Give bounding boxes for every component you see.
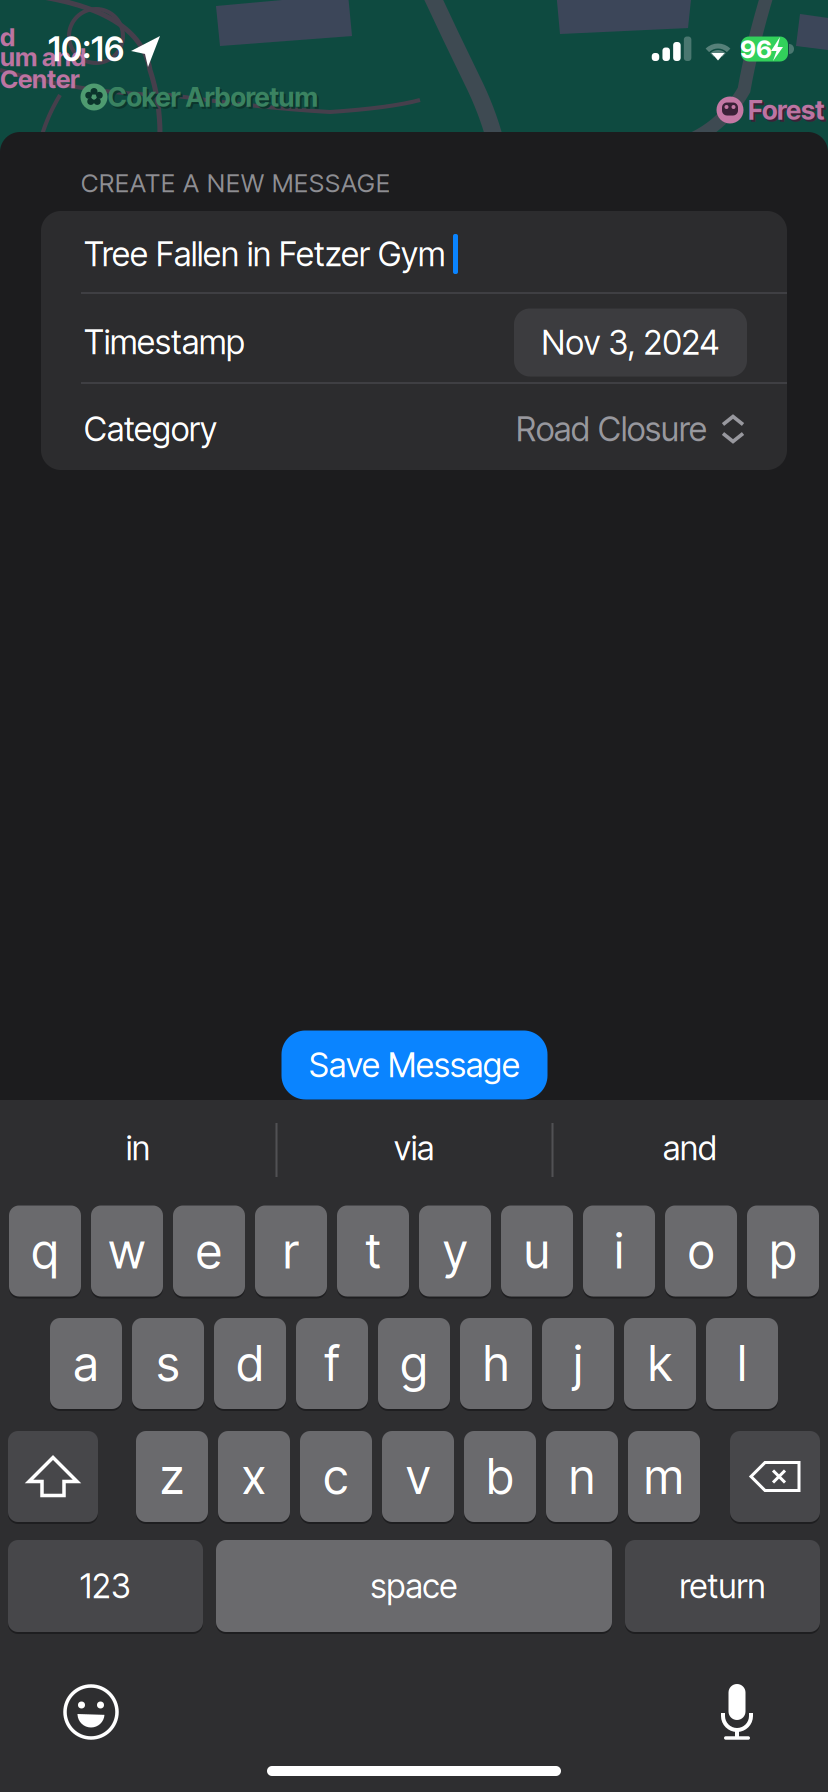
staticText: Tree Fallen in Fetzer Gym bbox=[84, 234, 445, 274]
button[interactable]: o bbox=[665, 1204, 737, 1297]
button[interactable]: n bbox=[546, 1430, 618, 1523]
button[interactable]: z bbox=[136, 1430, 208, 1523]
staticText: um and bbox=[0, 42, 86, 72]
button[interactable]: q bbox=[9, 1204, 81, 1297]
button[interactable]: p bbox=[747, 1204, 819, 1297]
staticText: f bbox=[324, 1335, 339, 1392]
button[interactable]: space bbox=[216, 1539, 612, 1633]
button[interactable]: l bbox=[706, 1317, 778, 1410]
staticText: o bbox=[688, 1223, 714, 1279]
button[interactable]: 123 bbox=[8, 1539, 203, 1633]
button[interactable]: Save Message bbox=[281, 1030, 547, 1099]
staticText: r bbox=[283, 1223, 299, 1279]
staticText: i bbox=[614, 1223, 623, 1279]
button[interactable]: d bbox=[214, 1317, 286, 1410]
staticText: CREATE A NEW MESSAGE bbox=[81, 168, 390, 198]
staticText: m bbox=[644, 1448, 684, 1505]
button[interactable]: j bbox=[542, 1317, 614, 1410]
staticText: q bbox=[31, 1223, 58, 1279]
staticText: b bbox=[486, 1448, 513, 1505]
staticText: z bbox=[160, 1448, 184, 1505]
button[interactable]: i bbox=[583, 1204, 655, 1297]
staticText: Save Message bbox=[309, 1045, 520, 1085]
staticText: h bbox=[483, 1335, 509, 1392]
staticText: 123 bbox=[80, 1566, 131, 1606]
staticText: j bbox=[573, 1335, 582, 1392]
staticText: via bbox=[394, 1128, 434, 1168]
staticText: y bbox=[443, 1223, 467, 1279]
button[interactable]: u bbox=[501, 1204, 573, 1297]
staticText: w bbox=[108, 1223, 145, 1279]
button[interactable]: Emoji bbox=[59, 1680, 123, 1744]
button[interactable]: g bbox=[378, 1317, 450, 1410]
staticText: a bbox=[73, 1335, 98, 1392]
button[interactable]: Road Closure bbox=[516, 409, 745, 449]
staticText: d bbox=[236, 1335, 263, 1392]
button[interactable]: m bbox=[628, 1430, 700, 1523]
button[interactable]: Shift bbox=[8, 1430, 98, 1523]
button[interactable]: return bbox=[625, 1539, 820, 1633]
staticText: in bbox=[126, 1128, 150, 1168]
staticText: p bbox=[769, 1223, 796, 1279]
button[interactable]: in bbox=[3, 1108, 273, 1188]
staticText: d bbox=[0, 22, 15, 52]
staticText: v bbox=[406, 1448, 430, 1505]
staticText: 96 bbox=[740, 34, 772, 64]
staticText: return bbox=[679, 1566, 765, 1606]
staticText: Timestamp bbox=[84, 322, 245, 362]
button[interactable]: e bbox=[173, 1204, 245, 1297]
button[interactable]: r bbox=[255, 1204, 327, 1297]
button[interactable]: a bbox=[50, 1317, 122, 1410]
button[interactable]: v bbox=[382, 1430, 454, 1523]
staticText: g bbox=[400, 1335, 427, 1392]
staticText: k bbox=[648, 1335, 672, 1392]
staticText: s bbox=[156, 1335, 179, 1392]
button[interactable]: b bbox=[464, 1430, 536, 1523]
staticText: n bbox=[569, 1448, 595, 1505]
button[interactable]: f bbox=[296, 1317, 368, 1410]
button[interactable]: Nov 3, 2024 bbox=[514, 308, 747, 376]
button[interactable]: c bbox=[300, 1430, 372, 1523]
staticText: 10:16 bbox=[48, 29, 124, 69]
button[interactable]: via bbox=[279, 1108, 549, 1188]
button[interactable]: h bbox=[460, 1317, 532, 1410]
button[interactable]: Delete bbox=[730, 1430, 820, 1523]
staticText: Center bbox=[0, 64, 80, 94]
button[interactable]: y bbox=[419, 1204, 491, 1297]
staticText: Coker Arboretum bbox=[109, 83, 320, 115]
button[interactable]: Message title bbox=[0, 212, 828, 296]
button[interactable]: s bbox=[132, 1317, 204, 1410]
button[interactable]: k bbox=[624, 1317, 696, 1410]
button[interactable]: w bbox=[91, 1204, 163, 1297]
staticText: u bbox=[524, 1223, 550, 1279]
button[interactable]: and bbox=[555, 1108, 825, 1188]
staticText: x bbox=[242, 1448, 266, 1505]
staticText: l bbox=[737, 1335, 746, 1392]
staticText: Coker Arboretum bbox=[107, 81, 318, 113]
staticText: Nov 3, 2024 bbox=[541, 323, 719, 362]
button[interactable]: t bbox=[337, 1204, 409, 1297]
button[interactable]: Dictate bbox=[705, 1680, 769, 1744]
staticText: and bbox=[663, 1128, 717, 1168]
staticText: c bbox=[323, 1448, 348, 1505]
button[interactable]: x bbox=[218, 1430, 290, 1523]
staticText: t bbox=[365, 1223, 380, 1279]
staticText: Road Closure bbox=[516, 409, 707, 449]
staticText: Forest T bbox=[748, 94, 828, 126]
staticText: Forest T bbox=[750, 96, 828, 128]
staticText: space bbox=[370, 1566, 457, 1606]
staticText: e bbox=[196, 1223, 222, 1279]
staticText: Category bbox=[84, 409, 217, 449]
